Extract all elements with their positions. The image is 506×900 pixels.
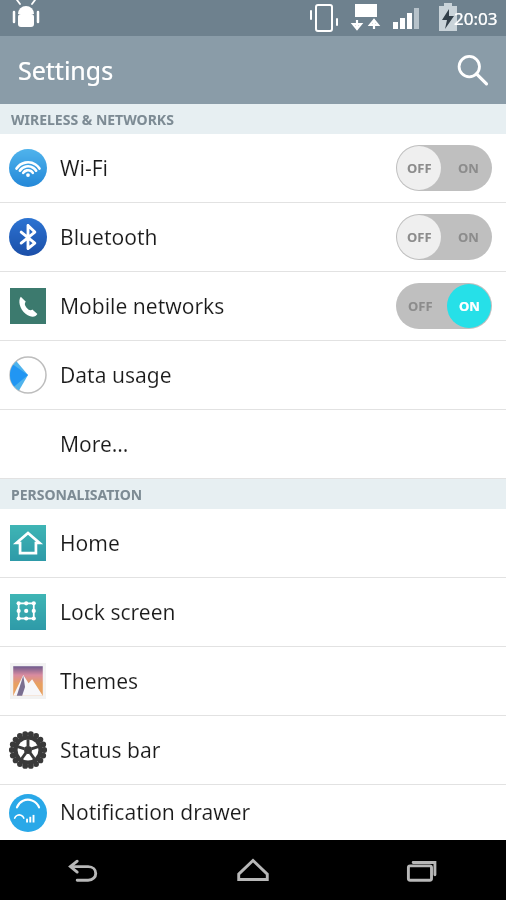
button[interactable]: Bluetooth [0, 203, 506, 272]
button[interactable]: Notification drawer [0, 785, 506, 840]
button[interactable]: Status bar [0, 716, 506, 785]
button[interactable]: Themes [0, 647, 506, 716]
staticText: Mobile networks [60, 292, 396, 321]
staticText: OFF [408, 159, 433, 177]
button[interactable]: Home [0, 509, 506, 578]
button[interactable]: Recent apps [337, 840, 506, 900]
button[interactable]: Lock screen [0, 578, 506, 647]
staticText: Data usage [60, 361, 498, 390]
staticText: Notification drawer [60, 798, 498, 827]
staticText: Settings [18, 53, 114, 87]
staticText: PERSONALISATION [11, 485, 143, 504]
staticText: Lock screen [60, 598, 498, 627]
button[interactable]: Toggle on [396, 283, 492, 329]
staticText: ON [459, 297, 480, 315]
button[interactable]: Mobile networks [0, 272, 506, 341]
button[interactable]: Home [168, 840, 337, 900]
button[interactable]: Search [438, 36, 506, 104]
staticText: 20:03 [454, 7, 498, 30]
staticText: ON [458, 297, 479, 315]
staticText: Themes [60, 667, 498, 696]
staticText: OFF [407, 159, 432, 177]
button[interactable]: Back [0, 840, 168, 900]
staticText: WIRELESS & NETWORKS [11, 110, 174, 129]
button[interactable]: Wi-Fi [0, 134, 506, 203]
staticText: ON [458, 159, 479, 177]
staticText: Home [60, 529, 498, 558]
staticText: Status bar [60, 736, 498, 765]
staticText: OFF [408, 228, 433, 246]
button[interactable]: Toggle off [396, 214, 492, 260]
button[interactable]: Data usage [0, 341, 506, 410]
staticText: Wi-Fi [60, 154, 396, 183]
button[interactable]: Toggle off [396, 145, 492, 191]
button[interactable]: More… [0, 410, 506, 479]
staticText: OFF [407, 228, 432, 246]
staticText: More… [60, 430, 498, 459]
staticText: OFF [408, 297, 433, 315]
staticText: ON [458, 228, 479, 246]
staticText: Bluetooth [60, 223, 396, 252]
